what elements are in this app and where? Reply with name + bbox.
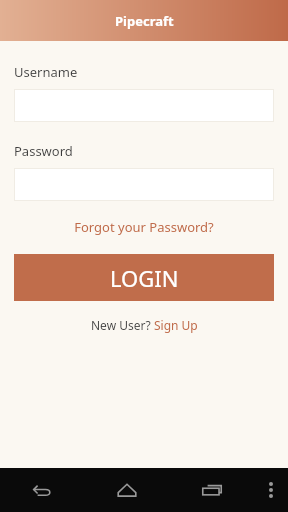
button[interactable]: LOGIN [14, 254, 274, 301]
staticText: New User? [91, 317, 154, 333]
button[interactable]: More options [254, 468, 288, 512]
staticText: Forgot your Password? [74, 218, 214, 236]
staticText: Username [14, 63, 78, 81]
staticText: Sign Up [154, 317, 198, 333]
staticText: Pipecraft [115, 12, 174, 30]
button[interactable]: Back [0, 468, 84, 512]
button[interactable]: Sign Up [154, 317, 198, 333]
button[interactable]: Forgot your Password? [0, 214, 288, 240]
staticText: LOGIN [110, 263, 179, 293]
button[interactable]: Home [84, 468, 169, 512]
staticText: Password [14, 142, 73, 160]
button[interactable] [14, 168, 274, 201]
button[interactable] [14, 89, 274, 122]
button[interactable]: Recent apps [169, 468, 254, 512]
